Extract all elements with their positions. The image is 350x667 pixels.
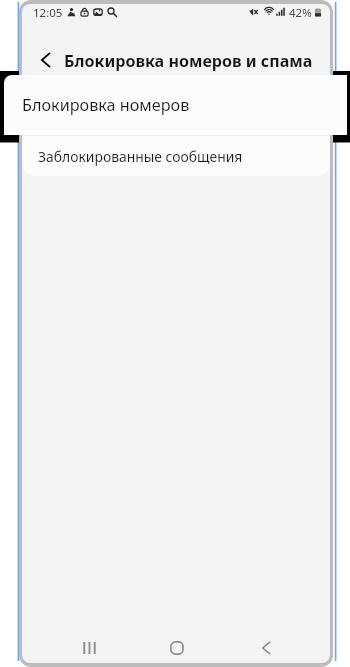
staticText: Заблокированные сообщения [38, 147, 243, 166]
staticText: 12:05 [33, 5, 63, 19]
button[interactable]: Заблокированные сообщения [22, 136, 330, 176]
staticText: 42% [289, 5, 312, 19]
staticText: Блокировка номеров [22, 94, 190, 116]
staticText: Блокировка номеров и спама [64, 50, 313, 72]
button[interactable]: Home [155, 633, 199, 663]
button[interactable]: Back [244, 633, 288, 663]
button[interactable]: Recent apps [67, 633, 111, 663]
button[interactable]: Back [30, 44, 62, 76]
button[interactable]: Блокировка номеров [4, 75, 347, 135]
